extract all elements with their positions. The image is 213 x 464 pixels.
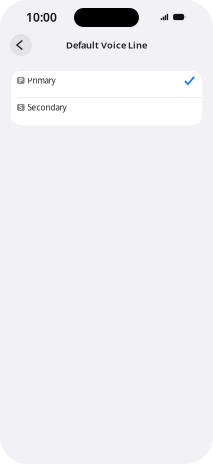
button[interactable]: Back — [10, 34, 32, 56]
staticText: S — [19, 103, 23, 112]
staticText: 10:00 — [26, 9, 57, 25]
button[interactable]: S — [11, 98, 202, 125]
staticText: Primary — [28, 75, 56, 86]
button[interactable]: P — [11, 71, 202, 97]
staticText: Default Voice Line — [66, 39, 147, 51]
staticText: Secondary — [28, 102, 67, 113]
staticText: P — [19, 76, 23, 85]
